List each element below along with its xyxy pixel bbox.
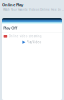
staticText: Play Off (3, 25, 17, 30)
staticText: Online video streaming (9, 34, 42, 38)
staticText: Play Video (27, 40, 42, 44)
button[interactable]: Play Video (2, 40, 62, 45)
staticText: Watch Your Favorite Videos Online Free I… (3, 8, 64, 11)
staticText: Online Play (2, 2, 23, 7)
